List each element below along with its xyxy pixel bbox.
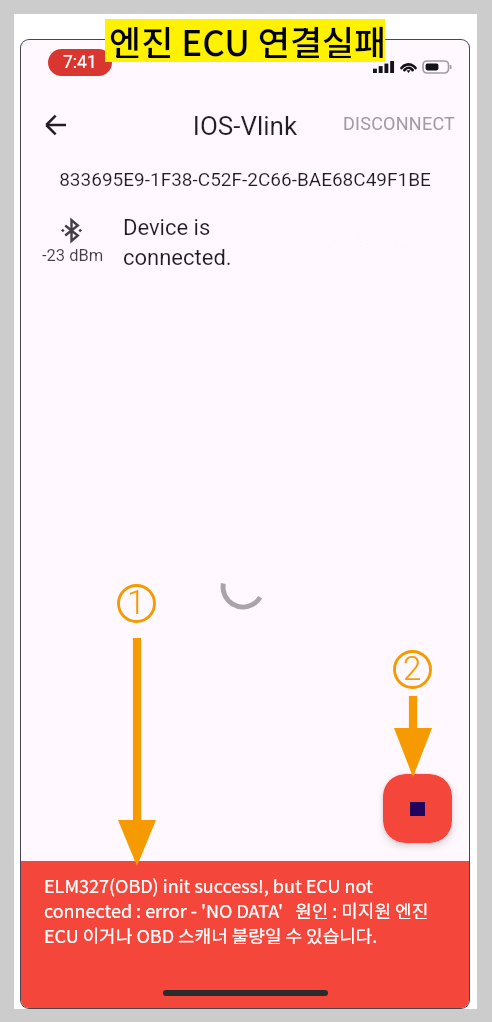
button[interactable]: DISCONNECT (336, 106, 463, 141)
staticText: connected. (123, 245, 232, 271)
button[interactable]: Back (35, 105, 75, 145)
staticText: ELM327(OBD) init success!, but ECU not (44, 872, 373, 898)
staticText: 엔진 ECU 연결실패 (109, 15, 387, 58)
staticText: IOS-Vlink (21, 111, 469, 141)
staticText: 833695E9-1F38-C52F-2C66-BAE68C49F1BE (21, 168, 469, 190)
staticText: 2 (403, 649, 422, 688)
staticText: Device is (123, 215, 211, 241)
staticText: 1 (127, 583, 146, 622)
button[interactable]: Stop (383, 774, 452, 843)
staticText: DISCONNECT (343, 113, 456, 134)
staticText: 7:41 (63, 52, 97, 73)
staticText: connected : error - 'NO DATA' 원인 : 미지원 엔… (44, 897, 429, 923)
staticText: ECU 이거나 OBD 스캐너 불량일 수 있습니다. (44, 922, 378, 948)
staticText: -23 dBm (42, 246, 104, 265)
